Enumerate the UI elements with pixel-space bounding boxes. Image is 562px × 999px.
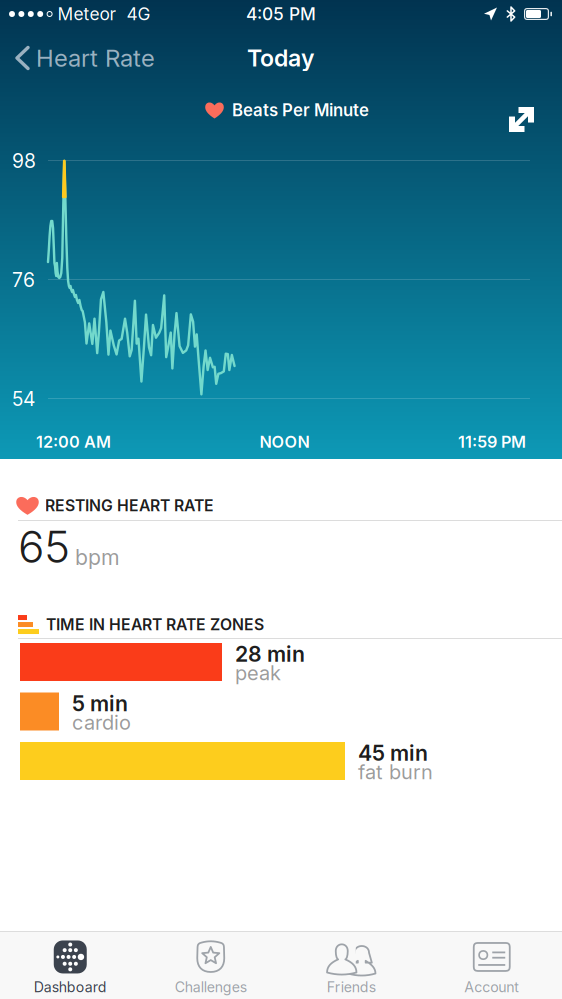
- button[interactable]: Expand chart: [498, 96, 545, 143]
- button[interactable]: Friends: [281, 930, 421, 999]
- staticText: 28 min: [235, 641, 305, 667]
- staticText: fat burn: [358, 760, 433, 784]
- staticText: 11:59 PM: [458, 432, 526, 452]
- staticText: RESTING HEART RATE: [45, 496, 214, 515]
- staticText: 54: [12, 387, 35, 411]
- staticText: 65: [18, 520, 70, 573]
- staticText: 5 min: [72, 691, 128, 716]
- staticText: 76: [12, 268, 35, 292]
- staticText: Meteor: [58, 3, 117, 24]
- staticText: bpm: [75, 544, 120, 570]
- staticText: Heart Rate: [36, 43, 155, 72]
- staticText: Account: [464, 978, 519, 995]
- button[interactable]: Dashboard: [0, 930, 140, 999]
- button[interactable]: Account: [421, 930, 562, 999]
- staticText: Challenges: [175, 978, 247, 995]
- staticText: 12:00 AM: [36, 432, 111, 452]
- staticText: 98: [12, 149, 36, 173]
- staticText: Dashboard: [34, 978, 107, 995]
- staticText: Friends: [327, 978, 376, 995]
- button[interactable]: Heart Rate: [0, 34, 155, 81]
- staticText: peak: [235, 661, 281, 685]
- staticText: NOON: [259, 432, 309, 452]
- button[interactable]: Challenges: [140, 930, 281, 999]
- staticText: Today: [247, 44, 315, 72]
- staticText: 45 min: [358, 740, 428, 766]
- staticText: cardio: [72, 710, 131, 735]
- staticText: 4G: [127, 3, 151, 24]
- staticText: TIME IN HEART RATE ZONES: [46, 615, 264, 634]
- staticText: Beats Per Minute: [232, 100, 369, 120]
- staticText: 4:05 PM: [246, 3, 316, 24]
